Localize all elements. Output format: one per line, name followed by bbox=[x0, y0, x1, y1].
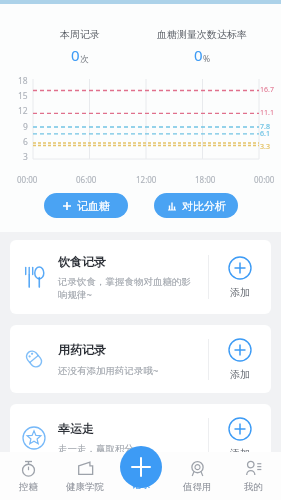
button[interactable]: 添加饮食记录 bbox=[209, 240, 271, 314]
staticText: 9 bbox=[23, 121, 28, 133]
staticText: 添加 bbox=[230, 368, 250, 381]
staticText: 健康学院 bbox=[66, 481, 104, 493]
button[interactable]: 记录 bbox=[120, 446, 162, 488]
button[interactable]: 记血糖 bbox=[44, 193, 128, 218]
button[interactable]: 添加用药记录 bbox=[209, 325, 271, 393]
staticText: 18 bbox=[18, 75, 28, 87]
staticText: 3 bbox=[23, 151, 28, 163]
staticText: 00:00 bbox=[254, 174, 275, 185]
staticText: 我的 bbox=[244, 481, 263, 493]
staticText: 添加 bbox=[230, 286, 250, 299]
staticText: 用药记录 bbox=[58, 342, 106, 357]
staticText: 18:00 bbox=[195, 174, 216, 185]
staticText: 11.1 bbox=[260, 108, 274, 118]
staticText: 7.8 bbox=[260, 122, 270, 132]
staticText: 12:00 bbox=[136, 174, 157, 185]
staticText: 控糖 bbox=[19, 481, 38, 493]
button[interactable]: 值得用 bbox=[169, 452, 225, 500]
staticText: 走一走，赢取积分 bbox=[58, 443, 134, 455]
staticText: 00:00 bbox=[17, 174, 38, 185]
staticText: 记录饮食，掌握食物对血糖的影 响规律~ bbox=[58, 276, 191, 301]
staticText: 记录 bbox=[132, 479, 151, 491]
staticText: 添加 bbox=[230, 447, 250, 460]
button[interactable]: 幸运走 bbox=[10, 404, 271, 472]
staticText: 0 bbox=[194, 45, 203, 65]
staticText: 16.7 bbox=[260, 85, 274, 95]
staticText: 12 bbox=[18, 105, 28, 117]
button[interactable]: 健康学院 bbox=[57, 452, 113, 500]
button[interactable]: 记录 bbox=[113, 452, 169, 500]
staticText: % bbox=[203, 53, 211, 65]
button[interactable]: 对比分析 bbox=[154, 193, 238, 218]
button[interactable]: 我的 bbox=[225, 452, 281, 500]
staticText: 次 bbox=[80, 54, 89, 65]
staticText: 还没有添加用药记录哦~ bbox=[58, 364, 159, 377]
button[interactable]: 控糖 bbox=[0, 452, 57, 500]
staticText: 6.1 bbox=[260, 129, 270, 139]
staticText: 06:00 bbox=[76, 174, 97, 185]
button[interactable]: 饮食记录 bbox=[10, 240, 271, 314]
staticText: 15 bbox=[18, 90, 28, 102]
staticText: 3.3 bbox=[260, 142, 270, 152]
staticText: 0 bbox=[71, 45, 80, 65]
staticText: 对比分析 bbox=[182, 199, 226, 213]
staticText: 记血糖 bbox=[77, 199, 110, 213]
staticText: 6 bbox=[23, 136, 28, 148]
staticText: 饮食记录 bbox=[58, 254, 106, 269]
staticText: 本周记录 bbox=[60, 28, 100, 41]
button[interactable]: 添加幸运走 bbox=[209, 404, 271, 472]
staticText: 值得用 bbox=[183, 481, 212, 493]
staticText: 幸运走 bbox=[58, 421, 94, 436]
button[interactable]: 用药记录 bbox=[10, 325, 271, 393]
staticText: 血糖测量次数达标率 bbox=[157, 28, 247, 41]
